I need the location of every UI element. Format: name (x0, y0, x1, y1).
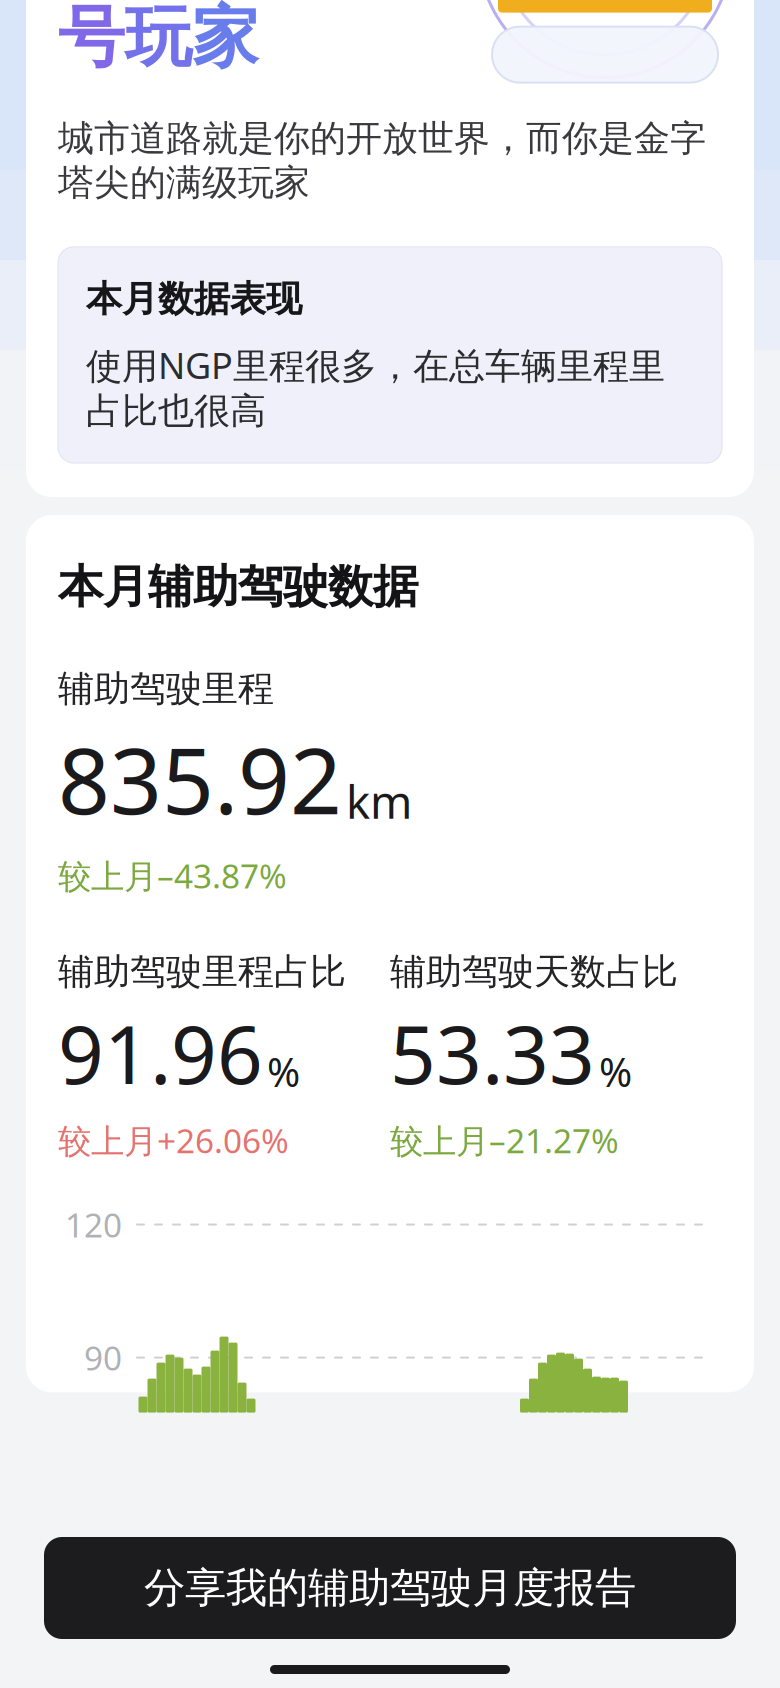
staticText: % (267, 1045, 300, 1098)
button[interactable]: 分享我的辅助驾驶月度报告 (44, 1537, 736, 1639)
staticText: 120 (65, 1202, 122, 1247)
staticText: 90 (84, 1335, 122, 1380)
staticText: 较上月–21.27% (390, 1118, 619, 1162)
staticText: 号 (58, 0, 125, 78)
staticText: 835.92 (58, 719, 342, 839)
staticText: 分享我的辅助驾驶月度报告 (144, 1563, 636, 1613)
staticText: km (346, 771, 412, 831)
staticText: 辅助驾驶里程占比 (58, 950, 346, 994)
staticText: 辅助驾驶天数占比 (390, 950, 678, 994)
staticText: 玩 (125, 0, 192, 78)
staticText: 本月数据表现 (86, 277, 302, 321)
staticText: 较上月+26.06% (58, 1118, 289, 1162)
staticText: 城市道路就是你的开放世界，而你是金字塔尖的满级玩家 (58, 116, 706, 205)
staticText: 辅助驾驶里程 (58, 667, 274, 711)
staticText: 53.33 (390, 1000, 595, 1106)
staticText: 使用NGP里程很多，在总车辆里程里占比也很高 (86, 341, 665, 433)
staticText: 家 (192, 0, 259, 78)
staticText: % (599, 1045, 632, 1098)
staticText: 91.96 (58, 1000, 263, 1106)
staticText: 本月辅助驾驶数据 (58, 559, 418, 615)
staticText: 较上月–43.87% (58, 853, 287, 898)
